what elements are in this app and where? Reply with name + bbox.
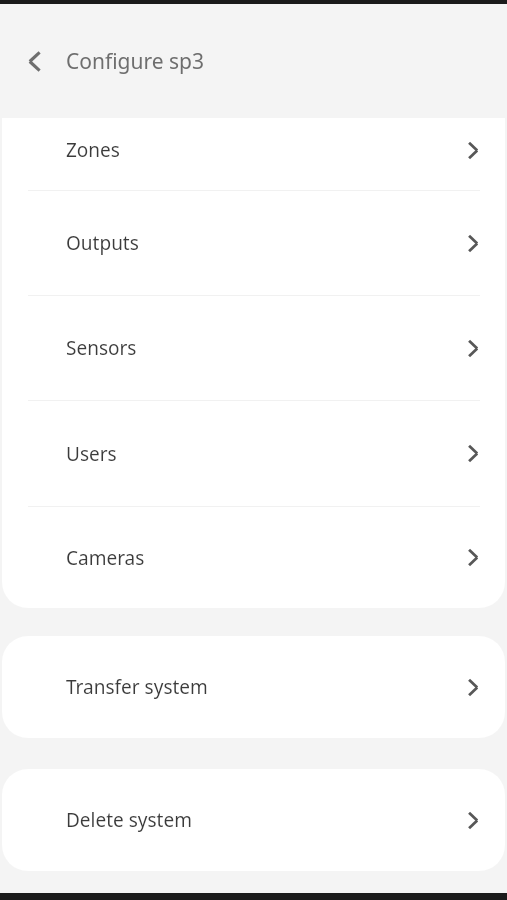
button[interactable]: Transfer system xyxy=(2,636,505,738)
staticText: Transfer system xyxy=(66,674,208,700)
staticText: Delete system xyxy=(66,807,192,833)
staticText: Sensors xyxy=(66,335,137,361)
staticText: Configure sp3 xyxy=(66,47,205,76)
button[interactable]: Users xyxy=(2,401,505,506)
button[interactable]: Back xyxy=(12,39,56,83)
button[interactable]: Sensors xyxy=(2,296,505,400)
button[interactable]: Zones xyxy=(2,118,505,190)
staticText: Users xyxy=(66,441,117,467)
staticText: Zones xyxy=(66,137,120,163)
button[interactable]: Delete system xyxy=(2,769,505,871)
button[interactable]: Cameras xyxy=(2,507,505,608)
button[interactable]: Outputs xyxy=(2,191,505,295)
staticText: Outputs xyxy=(66,230,139,256)
staticText: Cameras xyxy=(66,545,145,571)
